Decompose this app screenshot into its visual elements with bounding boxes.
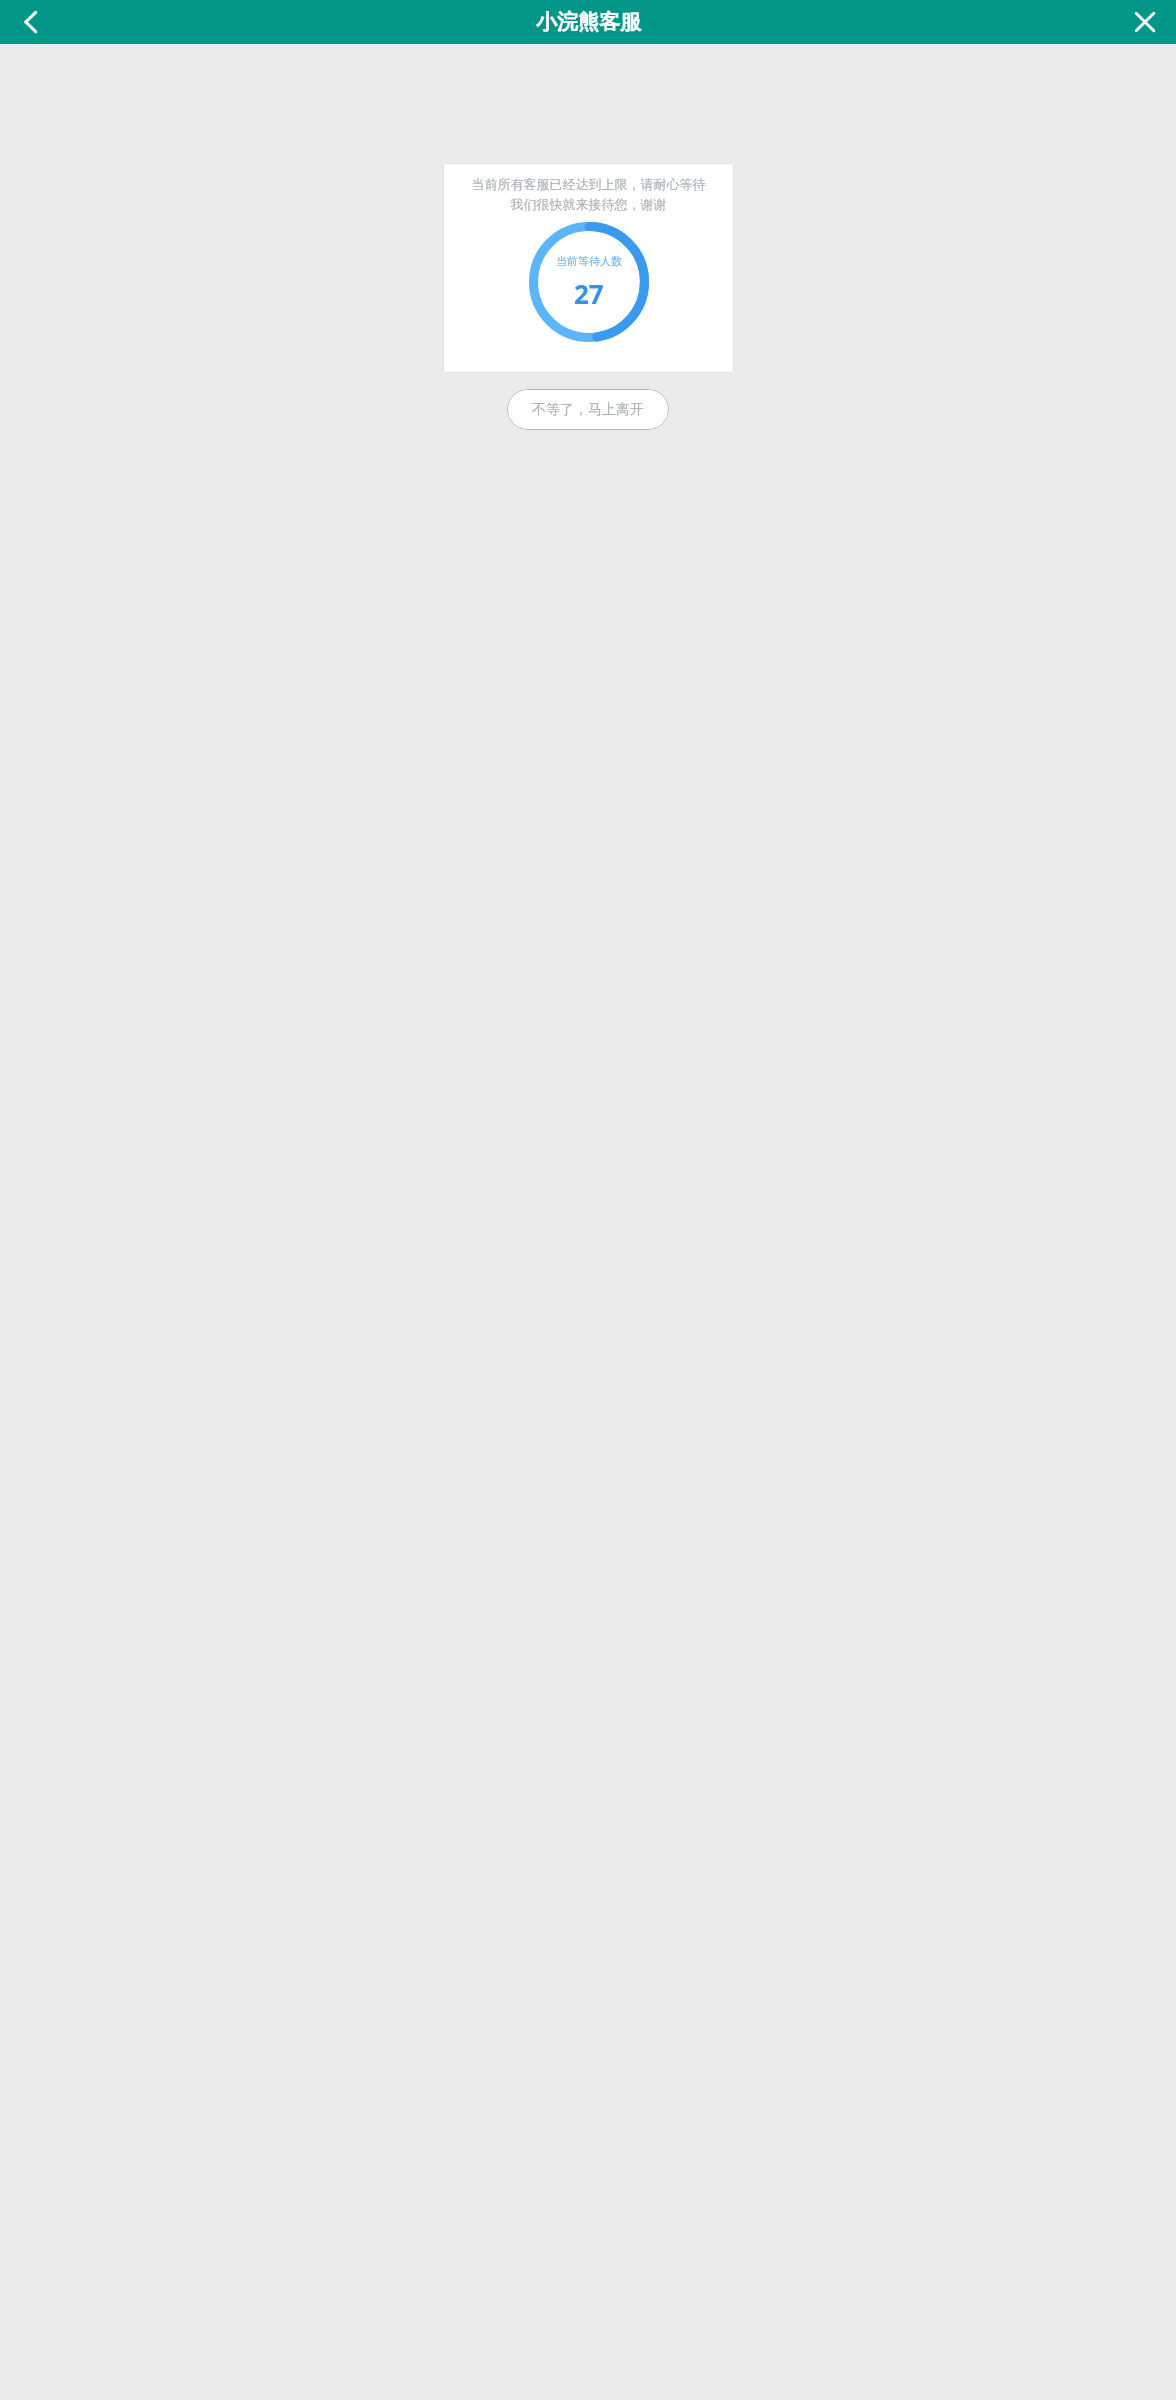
button[interactable]: Close [1123,0,1167,44]
staticText: 27 [574,276,604,311]
button[interactable]: Back [9,0,53,44]
staticText: 小浣熊客服 [536,9,641,35]
staticText: 不等了，马上离开 [532,401,644,419]
staticText: 当前等待人数 [556,254,622,268]
button[interactable]: 不等了，马上离开 [507,389,669,430]
staticText: 当前所有客服已经达到上限，请耐心等待 我们很快就来接待您，谢谢 [451,176,726,213]
